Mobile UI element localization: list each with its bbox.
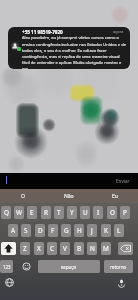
staticText: A xyxy=(11,226,16,235)
button[interactable]: Z xyxy=(20,242,30,255)
staticText: G xyxy=(64,226,69,235)
staticText: F xyxy=(51,226,55,235)
button[interactable]: F xyxy=(48,224,58,237)
staticText: M xyxy=(103,244,109,253)
button[interactable]: D xyxy=(35,224,45,237)
staticText: J xyxy=(91,226,93,235)
staticText: O xyxy=(110,208,115,217)
staticText: B xyxy=(77,244,82,253)
staticText: retorno xyxy=(110,264,127,270)
staticText: Y xyxy=(70,208,74,217)
staticText: L xyxy=(117,226,121,235)
button[interactable]: Enviar xyxy=(112,176,134,186)
button[interactable]: H xyxy=(74,224,84,237)
staticText: Q xyxy=(4,208,9,217)
button[interactable]: Emoji xyxy=(20,260,33,273)
button[interactable]: 123 xyxy=(0,260,13,273)
button[interactable]: Change keyboard xyxy=(5,278,14,287)
staticText: D xyxy=(38,226,43,235)
staticText: H xyxy=(77,226,82,235)
staticText: C xyxy=(50,244,55,253)
staticText: X xyxy=(37,244,41,253)
button[interactable]: O xyxy=(107,206,117,219)
staticText: V xyxy=(63,244,67,253)
button[interactable]: U xyxy=(80,206,90,219)
button[interactable]: P xyxy=(120,206,130,219)
staticText: espaço xyxy=(61,264,77,270)
staticText: N xyxy=(90,244,95,253)
staticText: Z xyxy=(23,244,27,253)
staticText: Alex pusebém, eu já comprei vários curso… xyxy=(22,35,128,69)
button[interactable]: W xyxy=(14,206,24,219)
button[interactable]: V xyxy=(60,242,70,255)
button[interactable]: B xyxy=(74,242,84,255)
button[interactable]: J xyxy=(87,224,97,237)
staticText: E xyxy=(30,208,34,217)
button[interactable]: Backspace xyxy=(118,242,133,255)
staticText: +55 11 98519-7920 xyxy=(22,29,63,35)
button[interactable]: I xyxy=(93,206,103,219)
button[interactable]: M xyxy=(101,242,111,255)
button[interactable]: N xyxy=(87,242,97,255)
staticText: K xyxy=(104,226,108,235)
button[interactable]: Q xyxy=(1,206,11,219)
staticText: Eu xyxy=(112,193,118,200)
staticText: Não xyxy=(64,193,74,200)
button[interactable]: retorno xyxy=(104,260,133,273)
staticText: Enviar xyxy=(116,178,130,184)
button[interactable]: K xyxy=(101,224,111,237)
button[interactable]: X xyxy=(34,242,44,255)
staticText: I xyxy=(97,208,100,217)
staticText: S xyxy=(24,226,28,235)
staticText: O xyxy=(21,193,25,200)
button[interactable]: A xyxy=(8,224,18,237)
staticText: W xyxy=(16,208,22,217)
button[interactable]: espaço xyxy=(38,260,100,273)
button[interactable]: L xyxy=(114,224,124,237)
staticText: P xyxy=(123,208,127,217)
button[interactable]: Eu xyxy=(92,189,138,203)
button[interactable]: T xyxy=(54,206,64,219)
staticText: agora xyxy=(113,29,124,34)
button[interactable]: Dictation xyxy=(117,278,126,287)
button[interactable]: G xyxy=(61,224,71,237)
staticText: T xyxy=(57,208,61,217)
button[interactable]: O xyxy=(0,189,46,203)
staticText: 123 xyxy=(3,264,11,270)
button[interactable]: R xyxy=(41,206,51,219)
button[interactable]: S xyxy=(21,224,31,237)
staticText: U xyxy=(83,208,88,217)
button[interactable]: Não xyxy=(46,189,92,203)
staticText: R xyxy=(44,208,48,217)
button[interactable]: E xyxy=(27,206,37,219)
button[interactable]: +55 11 98519-7920 xyxy=(8,27,130,69)
button[interactable]: Shift xyxy=(1,242,16,255)
button[interactable]: C xyxy=(47,242,57,255)
button[interactable]: Y xyxy=(67,206,77,219)
